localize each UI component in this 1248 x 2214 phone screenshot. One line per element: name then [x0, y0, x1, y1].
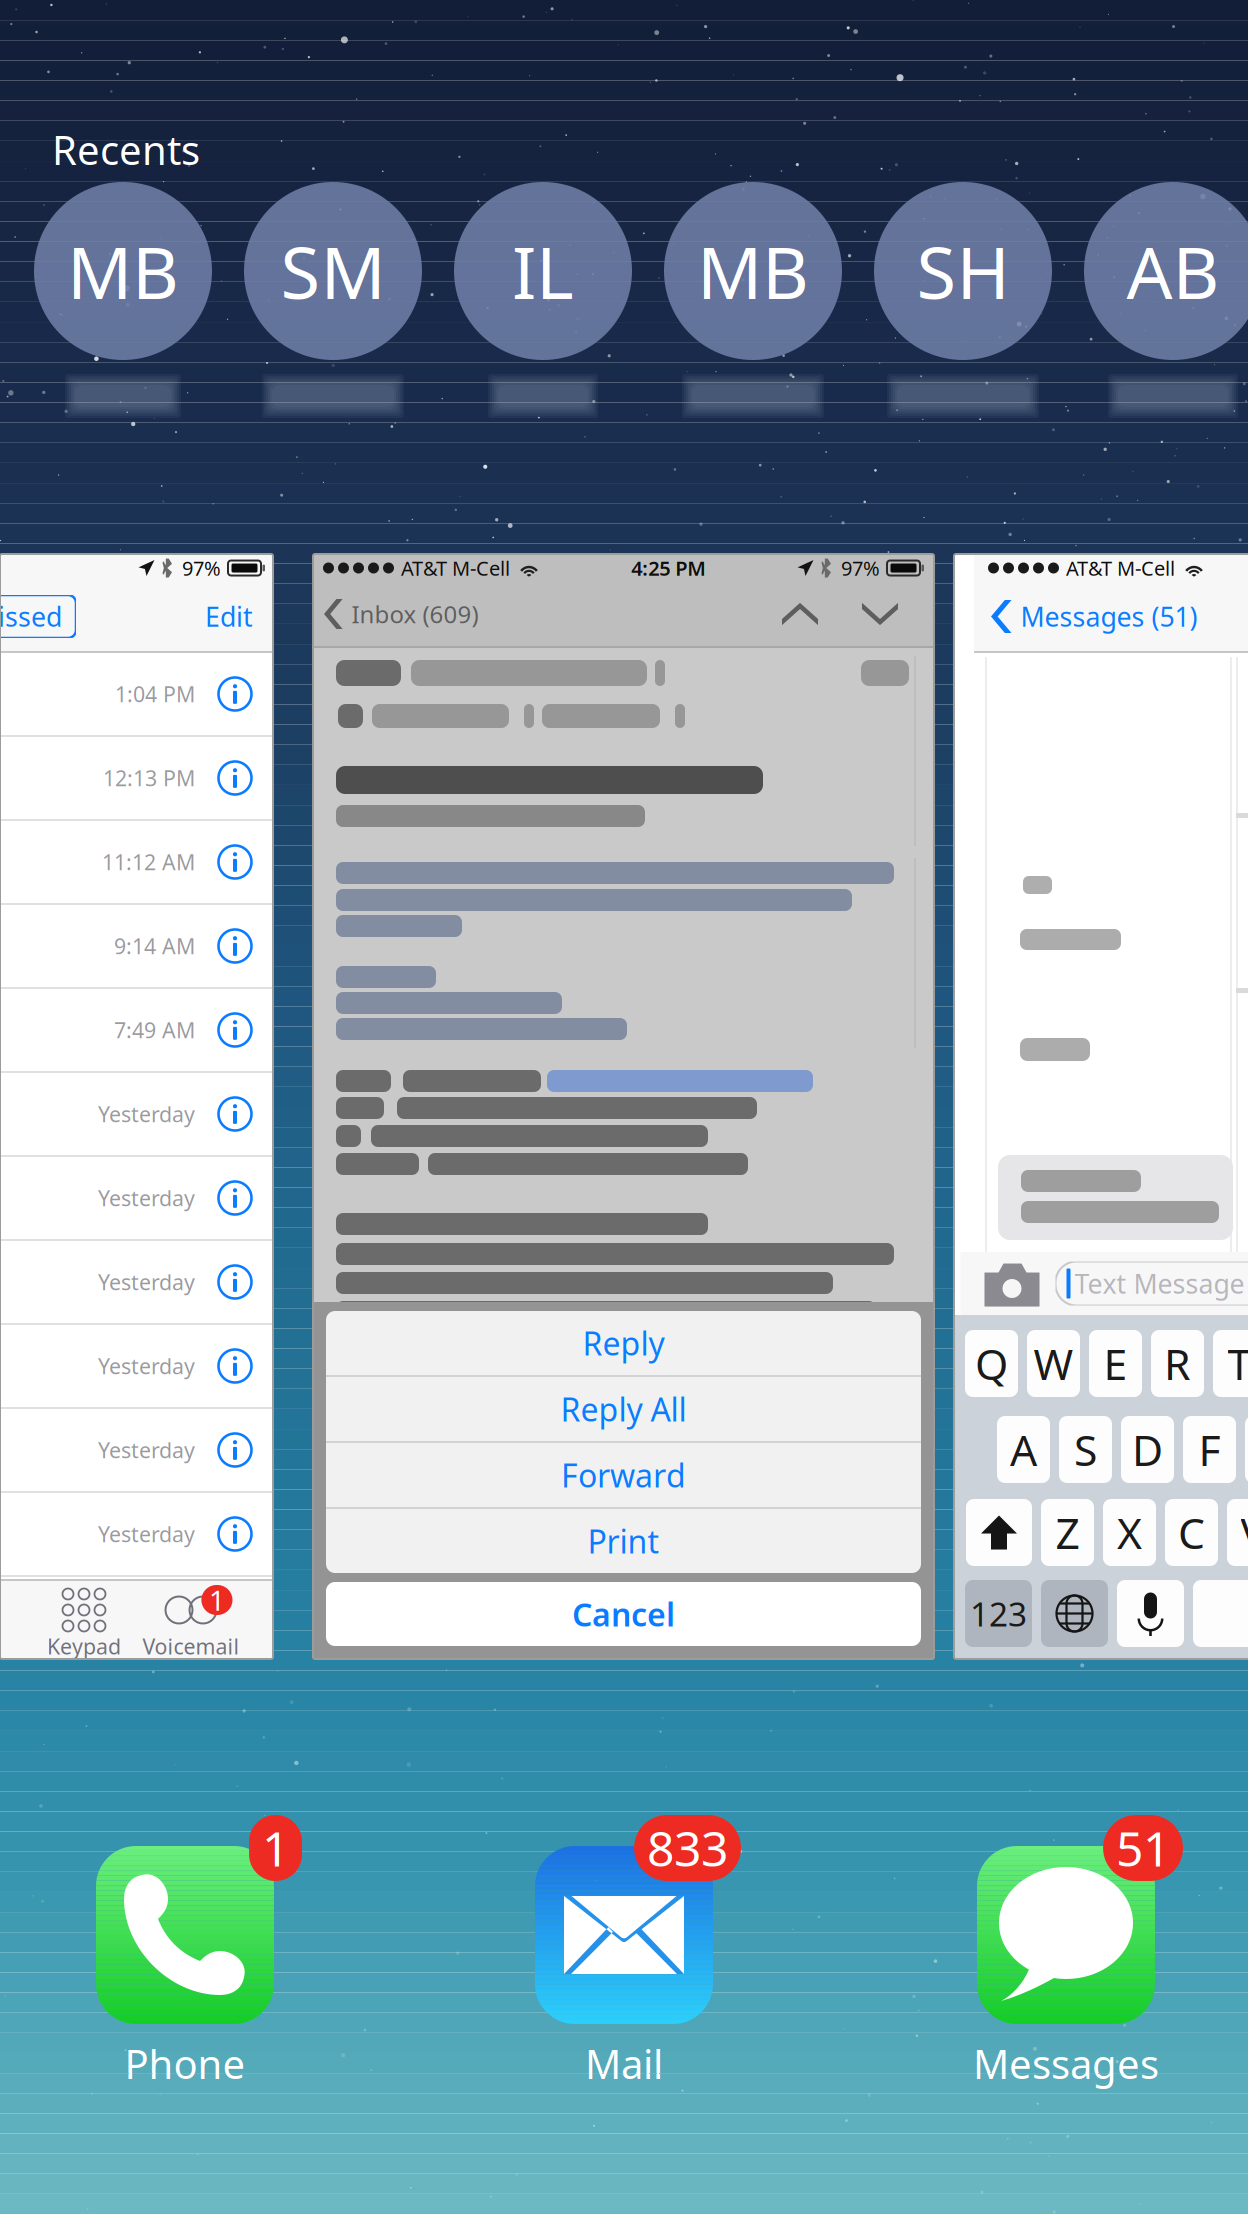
button[interactable]: Call details	[212, 1175, 258, 1221]
button[interactable]: T	[1213, 1330, 1248, 1397]
staticText: X	[1117, 1504, 1142, 1561]
staticText: Yesterday	[98, 1520, 195, 1548]
button[interactable]: Recent contact Mihai	[34, 182, 212, 422]
staticText: 7:49 AM	[114, 1016, 195, 1044]
button[interactable]: Inbox (609)	[324, 590, 479, 638]
button[interactable]: S	[1059, 1416, 1112, 1483]
staticText: 11:12 AM	[102, 848, 195, 876]
staticText: IL	[512, 223, 574, 319]
button[interactable]: Recent contact Ioana	[454, 182, 632, 422]
staticText: A	[1010, 1421, 1037, 1478]
staticText: Q	[975, 1335, 1008, 1392]
staticText: SH	[916, 223, 1009, 319]
button[interactable]: G	[1245, 1416, 1248, 1483]
button[interactable]: Reply	[326, 1311, 921, 1375]
button[interactable]: Recent contact Aurora	[1084, 182, 1248, 422]
staticText: R	[1164, 1335, 1191, 1392]
button[interactable]: E	[1089, 1330, 1142, 1397]
button[interactable]: Cancel	[326, 1582, 921, 1646]
staticText: 4:25 PM	[631, 555, 706, 581]
button[interactable]: 11:12 AM	[0, 821, 273, 905]
staticText: 1:04 PM	[115, 680, 195, 708]
button[interactable]: Yesterday	[0, 1325, 273, 1409]
button[interactable]: V	[1227, 1499, 1248, 1566]
staticText: 51	[1116, 1816, 1170, 1880]
button[interactable]: Take photo	[984, 1258, 1039, 1308]
staticText: Mail	[585, 2037, 663, 2090]
staticText: Yesterday	[98, 1352, 195, 1380]
button[interactable]: 1	[125, 1591, 257, 1660]
button[interactable]: Yesterday	[0, 1409, 273, 1493]
button[interactable]: 7:49 AM	[0, 989, 273, 1073]
button[interactable]: Call details	[212, 671, 258, 717]
staticText: Inbox (609)	[352, 598, 479, 630]
button[interactable]: W	[1027, 1330, 1080, 1397]
button[interactable]: F	[1183, 1416, 1236, 1483]
button[interactable]: Call details	[212, 1091, 258, 1137]
button[interactable]: 1:04 PM	[0, 653, 273, 737]
button[interactable]: Yesterday	[0, 1241, 273, 1325]
staticText: Messages (51)	[1020, 599, 1197, 634]
button[interactable]: Edit	[191, 591, 267, 642]
button[interactable]: Keypad	[18, 1591, 150, 1660]
button[interactable]: Reply All	[326, 1377, 921, 1441]
staticText: W	[1033, 1335, 1073, 1392]
button[interactable]: Call details	[212, 1343, 258, 1389]
button[interactable]: Recent contact Monica	[664, 182, 842, 422]
button[interactable]: Call details	[212, 755, 258, 801]
button[interactable]: Call details	[212, 1259, 258, 1305]
staticText: 12:13 PM	[103, 764, 195, 792]
button[interactable]: Shift	[966, 1499, 1032, 1566]
staticText: MB	[697, 223, 809, 319]
button[interactable]: Yesterday	[0, 1157, 273, 1241]
button[interactable]: AT&T M-Cell	[974, 554, 1248, 1659]
button[interactable]: 9:14 AM	[0, 905, 273, 989]
button[interactable]: Dictate	[1117, 1580, 1184, 1647]
staticText: 9:14 AM	[114, 932, 195, 960]
button[interactable]: C	[1165, 1499, 1218, 1566]
button[interactable]: Call details	[212, 839, 258, 885]
staticText: F	[1198, 1421, 1220, 1478]
button[interactable]: Switch keyboard	[1041, 1580, 1108, 1647]
staticText: Print	[587, 1520, 659, 1562]
button[interactable]: Call details	[212, 1007, 258, 1053]
button[interactable]: 12:13 PM	[0, 737, 273, 821]
button[interactable]: X	[1103, 1499, 1156, 1566]
staticText: Phone	[124, 2037, 245, 2090]
button[interactable]: issed	[0, 595, 160, 638]
button[interactable]: Forward	[326, 1443, 921, 1507]
button[interactable]: Z	[1041, 1499, 1094, 1566]
button[interactable]: R	[1151, 1330, 1204, 1397]
button[interactable]: 123	[965, 1580, 1032, 1647]
button[interactable]: Q	[965, 1330, 1018, 1397]
staticText: Yesterday	[98, 1184, 195, 1212]
button[interactable]: Call details	[212, 1427, 258, 1473]
button[interactable]: AT&T M-Cell	[313, 554, 934, 1659]
button[interactable]: Print	[326, 1509, 921, 1573]
staticText: Z	[1055, 1504, 1079, 1561]
button[interactable]: Call details	[212, 923, 258, 969]
staticText: SM	[280, 223, 385, 319]
staticText: AT&T M-Cell	[1066, 555, 1175, 581]
button[interactable]: D	[1121, 1416, 1174, 1483]
button[interactable]: Yesterday	[0, 1493, 273, 1577]
button[interactable]: Messages (51)	[991, 591, 1197, 642]
button[interactable]: A	[997, 1416, 1050, 1483]
staticText: V	[1240, 1504, 1248, 1561]
staticText: Yesterday	[98, 1268, 195, 1296]
staticText: Forward	[561, 1454, 686, 1496]
button[interactable]: 51	[946, 1846, 1186, 2090]
button[interactable]: Recent contact Summer	[874, 182, 1052, 422]
button[interactable]: 1	[65, 1846, 305, 2090]
staticText: 97%	[182, 555, 221, 581]
button[interactable]: 97%	[0, 554, 273, 1659]
button[interactable]: Yesterday	[0, 1073, 273, 1157]
staticText: Cancel	[572, 1593, 675, 1635]
button[interactable]: 833	[504, 1846, 744, 2090]
button[interactable]: Recent contact Simona	[244, 182, 422, 422]
button[interactable]: Call details	[212, 1511, 258, 1557]
staticText: Edit	[205, 599, 253, 634]
button[interactable]: Previous message	[770, 591, 830, 637]
staticText: Keypad	[47, 1632, 121, 1660]
button[interactable]: Next message	[850, 591, 910, 637]
